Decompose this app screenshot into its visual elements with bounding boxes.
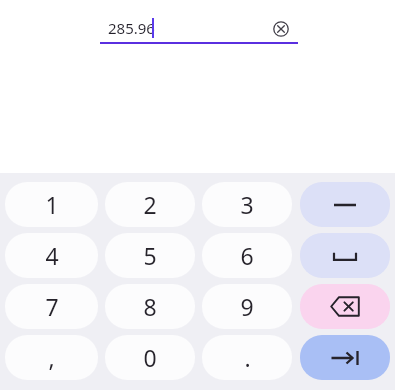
staticText: ,	[48, 342, 55, 373]
button[interactable]: .	[202, 335, 292, 380]
button[interactable]: Minus	[300, 182, 390, 227]
staticText: 0	[143, 342, 157, 373]
button[interactable]: 3	[202, 182, 292, 227]
button[interactable]: 7	[5, 284, 98, 329]
button[interactable]: 9	[202, 284, 292, 329]
button[interactable]: 285.96	[100, 14, 298, 46]
button[interactable]: 2	[105, 182, 195, 227]
staticText: 6	[240, 240, 254, 271]
button[interactable]: 5	[105, 233, 195, 278]
button[interactable]: ,	[5, 335, 98, 380]
button[interactable]: 0	[105, 335, 195, 380]
staticText: 5	[143, 240, 157, 271]
button[interactable]: 1	[5, 182, 98, 227]
button[interactable]: Space	[300, 233, 390, 278]
staticText: 1	[45, 189, 59, 220]
button[interactable]: 8	[105, 284, 195, 329]
button[interactable]: Clear text	[271, 19, 291, 39]
staticText: 7	[45, 291, 59, 322]
staticText: .	[244, 342, 251, 373]
staticText: 9	[240, 291, 254, 322]
staticText: 3	[240, 189, 254, 220]
staticText: 8	[143, 291, 157, 322]
button[interactable]: Next field	[300, 335, 390, 380]
staticText: 2	[143, 189, 157, 220]
button[interactable]: 6	[202, 233, 292, 278]
staticText: 4	[45, 240, 59, 271]
button[interactable]: Backspace	[300, 284, 390, 329]
button[interactable]: 4	[5, 233, 98, 278]
staticText: 285.96	[108, 18, 155, 38]
